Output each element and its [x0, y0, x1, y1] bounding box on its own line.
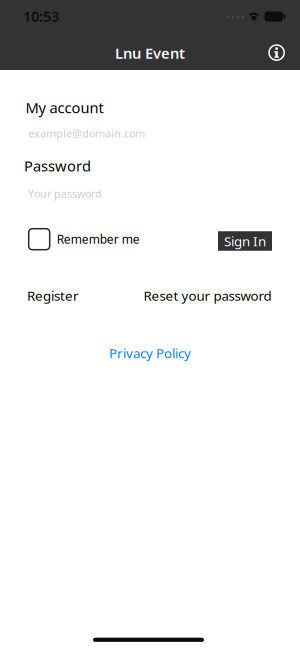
staticText: Privacy Policy [109, 344, 191, 362]
staticText: Your password [28, 186, 102, 201]
staticText: Register [27, 287, 79, 304]
staticText: example@domain.com [28, 126, 145, 140]
button[interactable]: Reset your password [143, 287, 271, 304]
staticText: My account [26, 98, 104, 117]
button[interactable]: Sign In [218, 231, 272, 251]
staticText: 10:53 [23, 6, 59, 26]
button[interactable]: Remember me [29, 229, 140, 250]
button[interactable] [266, 42, 288, 64]
staticText: Remember me [57, 231, 140, 247]
staticText: Password [24, 156, 91, 176]
staticText: Reset your password [143, 287, 271, 304]
staticText: Sign In [224, 232, 266, 250]
button[interactable]: Privacy Policy [109, 344, 191, 362]
staticText: Lnu Event [115, 43, 185, 63]
button[interactable]: Register [27, 287, 79, 304]
